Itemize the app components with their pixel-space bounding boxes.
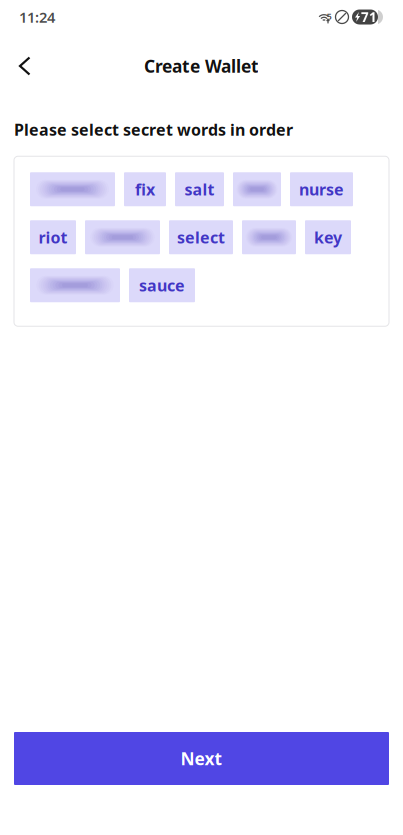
button[interactable]	[30, 172, 115, 206]
button[interactable]	[85, 220, 160, 254]
staticText: Please select secret words in order	[14, 119, 293, 140]
button[interactable]	[30, 268, 120, 302]
staticText: riot	[38, 227, 67, 248]
button[interactable]: riot	[30, 220, 76, 254]
staticText: 5	[326, 10, 331, 22]
button[interactable]: nurse	[290, 172, 353, 206]
button[interactable]: select	[169, 220, 233, 254]
staticText: key	[314, 227, 342, 248]
button[interactable]: key	[305, 220, 351, 254]
staticText: 11:24	[19, 7, 55, 27]
staticText: select	[177, 227, 225, 248]
button[interactable]: Back	[0, 44, 50, 88]
staticText: Create Wallet	[144, 54, 259, 77]
button[interactable]	[233, 172, 281, 206]
button[interactable]	[242, 220, 296, 254]
button[interactable]: salt	[175, 172, 224, 206]
button[interactable]: fix	[124, 172, 166, 206]
button[interactable]: Next	[14, 732, 389, 785]
staticText: Next	[180, 747, 222, 770]
staticText: 71	[361, 8, 377, 26]
staticText: sauce	[139, 275, 185, 296]
button[interactable]: sauce	[129, 268, 195, 302]
staticText: fix	[135, 179, 155, 200]
staticText: salt	[184, 179, 214, 200]
staticText: nurse	[299, 179, 344, 200]
